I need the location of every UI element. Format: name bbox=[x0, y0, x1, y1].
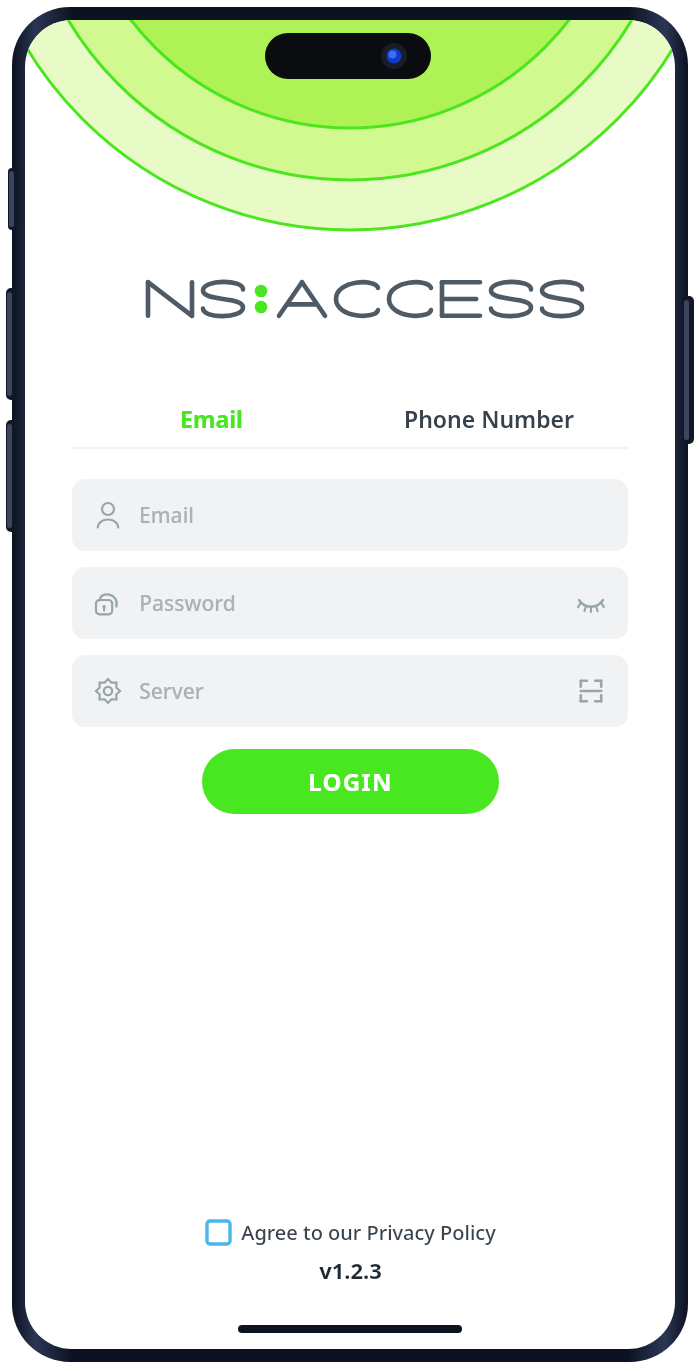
button[interactable]: Show password bbox=[575, 587, 607, 619]
staticText: Agree to our Privacy Policy bbox=[241, 1219, 496, 1246]
staticText: Password bbox=[139, 589, 236, 618]
staticText: Phone Number bbox=[404, 403, 574, 434]
staticText: Email bbox=[180, 403, 243, 434]
staticText: Email bbox=[139, 501, 194, 530]
button[interactable]: LOGIN bbox=[202, 749, 499, 814]
button[interactable]: Server bbox=[72, 655, 628, 727]
button[interactable]: Email bbox=[72, 479, 628, 551]
button[interactable]: Scan QR code bbox=[575, 675, 607, 707]
staticText: v1.2.3 bbox=[319, 1255, 382, 1285]
button[interactable]: Agree to our Privacy Policy bbox=[25, 1219, 675, 1246]
button[interactable]: Phone Number bbox=[350, 397, 628, 439]
staticText: Server bbox=[139, 677, 204, 706]
button[interactable]: Password bbox=[72, 567, 628, 639]
button[interactable]: Email bbox=[72, 397, 350, 439]
staticText: LOGIN bbox=[308, 765, 393, 798]
